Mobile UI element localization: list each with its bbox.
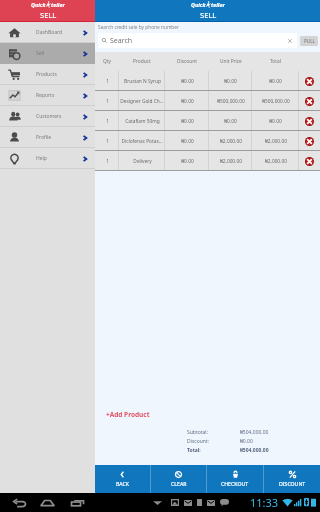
button[interactable]: DashBoard bbox=[0, 22, 95, 43]
button[interactable]: 1 bbox=[95, 131, 320, 151]
staticText: DISCOUNT bbox=[279, 480, 306, 487]
staticText: Discount bbox=[177, 58, 197, 65]
button[interactable]: Home bbox=[36, 493, 59, 512]
staticText: PULL bbox=[304, 38, 315, 44]
staticText: ₦0.00 bbox=[224, 78, 237, 85]
staticText: ₦2,000.00 bbox=[220, 158, 242, 165]
staticText: BACK bbox=[116, 480, 130, 487]
staticText: DashBoard bbox=[36, 29, 63, 36]
staticText: 1 bbox=[106, 158, 109, 165]
staticText: teller bbox=[211, 1, 225, 8]
staticText: SELL bbox=[40, 10, 57, 20]
staticText: ₦0.00 bbox=[181, 98, 194, 105]
staticText: Profile bbox=[36, 134, 52, 141]
staticText: Search bbox=[110, 36, 133, 46]
button[interactable]: +Add Product bbox=[106, 410, 150, 419]
staticText: Quick bbox=[31, 1, 46, 8]
staticText: ₦0.00 bbox=[181, 118, 194, 125]
button[interactable]: Recent apps bbox=[66, 493, 89, 512]
staticText: teller bbox=[51, 1, 65, 8]
staticText: Product bbox=[133, 58, 151, 65]
staticText: ₦0.00 bbox=[181, 138, 194, 145]
button[interactable]: Sell bbox=[0, 43, 95, 64]
staticText: 1 bbox=[106, 138, 109, 145]
button[interactable]: BACK bbox=[95, 465, 150, 493]
staticText: Qty bbox=[103, 58, 111, 65]
staticText: Search credit sale by phone number bbox=[98, 24, 180, 31]
staticText: ₦2,000.00 bbox=[265, 138, 287, 145]
button[interactable]: DISCOUNT bbox=[264, 465, 320, 493]
staticText: 1 bbox=[106, 118, 109, 125]
staticText: ₦0.00 bbox=[240, 438, 253, 445]
staticText: Customers bbox=[36, 113, 62, 120]
staticText: ₦0.00 bbox=[269, 78, 282, 85]
staticText: 1 bbox=[106, 98, 109, 105]
staticText: Designer Gold Ch... bbox=[120, 98, 164, 105]
staticText: Total bbox=[270, 58, 281, 65]
staticText: ₦500,000.00 bbox=[217, 98, 245, 105]
staticText: ₦504,000.00 bbox=[240, 447, 269, 454]
other: Remove item bbox=[305, 77, 314, 86]
button[interactable]: 1 bbox=[95, 71, 320, 91]
button[interactable]: Reports bbox=[0, 85, 95, 106]
button[interactable]: Search bbox=[98, 33, 297, 48]
staticText: ₦2,000.00 bbox=[265, 158, 287, 165]
other: Remove item bbox=[305, 137, 314, 146]
staticText: Quick bbox=[191, 1, 206, 8]
staticText: +Add Product bbox=[106, 410, 150, 419]
button[interactable]: Profile bbox=[0, 127, 95, 148]
staticText: CLEAR bbox=[171, 480, 187, 487]
button[interactable]: 1 bbox=[95, 91, 320, 111]
other: Clear search bbox=[287, 38, 293, 44]
button[interactable]: CHECKOUT bbox=[207, 465, 263, 493]
staticText: Sell bbox=[36, 50, 45, 57]
button[interactable]: PULL bbox=[300, 36, 318, 46]
button[interactable]: Help bbox=[0, 148, 95, 169]
staticText: 1 bbox=[106, 78, 109, 85]
other: Remove item bbox=[305, 97, 314, 106]
staticText: Help bbox=[36, 155, 47, 162]
button[interactable]: Customers bbox=[0, 106, 95, 127]
staticText: CHECKOUT bbox=[221, 480, 249, 487]
staticText: Reports bbox=[36, 92, 55, 99]
staticText: Unit Price bbox=[220, 58, 242, 65]
staticText: ₦0.00 bbox=[269, 118, 282, 125]
button[interactable]: 1 bbox=[95, 111, 320, 131]
other: Remove item bbox=[305, 117, 314, 126]
staticText: Products bbox=[36, 71, 57, 78]
staticText: Subtotal: bbox=[187, 429, 208, 436]
other: Remove item bbox=[305, 157, 314, 166]
button[interactable]: CLEAR bbox=[151, 465, 206, 493]
button[interactable]: 1 bbox=[95, 151, 320, 171]
staticText: ₦500,000.00 bbox=[262, 98, 290, 105]
staticText: Brustan N Syrup bbox=[124, 78, 161, 85]
staticText: Total: bbox=[187, 447, 201, 454]
staticText: Discount: bbox=[187, 438, 210, 445]
staticText: ₦0.00 bbox=[181, 158, 194, 165]
staticText: Cataflam 50mg bbox=[125, 118, 160, 125]
staticText: SELL bbox=[200, 10, 217, 20]
staticText: ₦0.00 bbox=[181, 78, 194, 85]
staticText: ₦2,000.00 bbox=[220, 138, 242, 145]
staticText: Diclofenac Potas... bbox=[121, 138, 163, 145]
staticText: 11:33 bbox=[250, 495, 279, 510]
button[interactable]: Back bbox=[7, 493, 31, 512]
staticText: ₦0.00 bbox=[224, 118, 237, 125]
staticText: Delivery bbox=[133, 158, 152, 165]
button[interactable]: Products bbox=[0, 64, 95, 85]
staticText: ₦504,000.00 bbox=[240, 429, 269, 436]
